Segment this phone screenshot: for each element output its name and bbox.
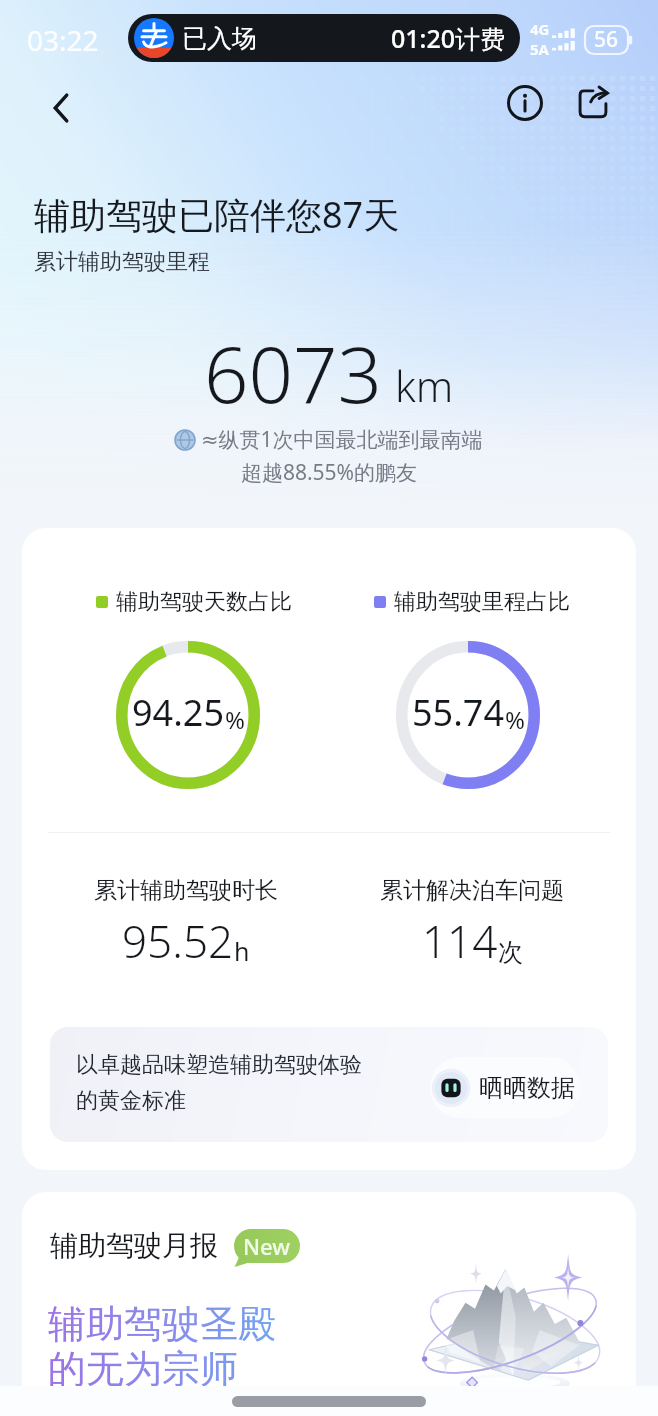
staticText: 94.25: [132, 688, 225, 737]
staticText: 以卓越品味塑造辅助驾驶体验: [76, 1051, 362, 1079]
staticText: 55.74: [412, 688, 505, 737]
staticText: New: [243, 1231, 291, 1261]
staticText: 114: [422, 911, 498, 971]
staticText: 6073: [204, 320, 383, 426]
button[interactable]: 辅助驾驶月报: [22, 1192, 636, 1416]
staticText: 03:22: [27, 21, 99, 59]
staticText: 累计解决泊车问题: [380, 876, 564, 905]
staticText: h: [234, 934, 250, 968]
staticText: 的无为宗师: [48, 1345, 238, 1393]
staticText: 辅助驾驶天数占比: [116, 588, 292, 616]
staticText: 辅助驾驶月报: [50, 1228, 218, 1263]
staticText: 辅助驾驶圣殿: [48, 1300, 276, 1348]
staticText: 超越88.55%的鹏友: [0, 458, 658, 487]
staticText: 累计辅助驾驶里程: [34, 248, 210, 276]
staticText: 5A: [530, 39, 549, 59]
button[interactable]: Share: [566, 76, 620, 130]
staticText: 累计辅助驾驶时长: [94, 876, 278, 905]
staticText: %: [505, 703, 525, 736]
staticText: 已入场: [182, 23, 257, 54]
staticText: 01:20计费: [391, 21, 506, 55]
staticText: %: [225, 703, 245, 736]
button[interactable]: 晒晒数据: [430, 1057, 580, 1118]
staticText: 辅助驾驶里程占比: [394, 588, 570, 616]
staticText: 晒晒数据: [479, 1073, 575, 1103]
button[interactable]: Back: [35, 81, 89, 135]
staticText: km: [395, 357, 454, 414]
staticText: 的黄金标准: [76, 1087, 186, 1115]
staticText: 次: [498, 937, 523, 968]
staticText: 56: [594, 25, 619, 54]
staticText: 辅助驾驶已陪伴您87天: [34, 190, 400, 239]
staticText: 4G: [530, 19, 550, 39]
staticText: ≈纵贯1次中国最北端到最南端: [201, 425, 483, 454]
button[interactable]: Info: [498, 76, 552, 130]
staticText: 95.52: [122, 911, 234, 971]
